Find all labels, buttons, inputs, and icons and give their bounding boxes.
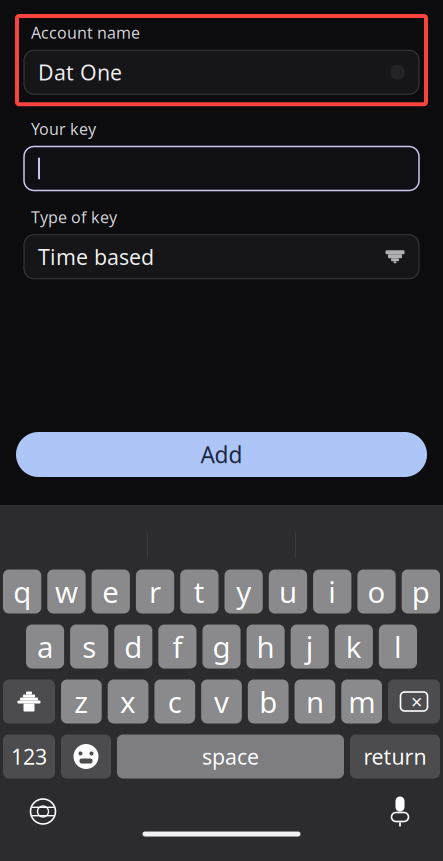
staticText: m [348, 682, 375, 721]
button[interactable]: x [108, 679, 148, 723]
staticText: e [102, 572, 119, 611]
staticText: Your key [31, 118, 96, 139]
button[interactable]: z [61, 679, 102, 723]
button[interactable]: r [136, 569, 174, 613]
staticText: q [13, 572, 31, 611]
button[interactable] [24, 146, 419, 190]
button[interactable]: Dictation [377, 790, 423, 832]
button[interactable]: e [92, 569, 130, 613]
staticText: p [412, 572, 430, 611]
staticText: i [328, 572, 336, 611]
button[interactable]: y [224, 569, 263, 613]
staticText: Type of key [31, 206, 117, 228]
staticText: 123 [11, 742, 47, 771]
button[interactable]: d [114, 624, 152, 668]
staticText: return [363, 742, 426, 771]
button[interactable]: Add [16, 432, 427, 477]
staticText: l [394, 627, 402, 666]
button[interactable]: j [291, 624, 329, 668]
staticText: n [306, 682, 324, 721]
staticText: v [214, 682, 229, 721]
button[interactable]: m [341, 679, 382, 723]
staticText: d [124, 627, 142, 666]
button[interactable]: t [180, 569, 218, 613]
button[interactable]: Dat One [24, 50, 419, 94]
button[interactable]: 123 [3, 734, 55, 778]
staticText: Add [200, 439, 242, 469]
button[interactable]: space [117, 734, 344, 778]
staticText: x [120, 682, 136, 721]
staticText: s [82, 627, 96, 666]
staticText: u [279, 572, 297, 611]
staticText: f [172, 627, 182, 666]
button[interactable]: f [158, 624, 196, 668]
staticText: Time based [38, 243, 154, 271]
staticText: × [411, 688, 422, 715]
button[interactable]: v [201, 679, 242, 723]
staticText: h [257, 627, 275, 666]
button[interactable]: i [313, 569, 351, 613]
staticText: a [37, 627, 53, 666]
button[interactable]: b [248, 679, 289, 723]
staticText: z [74, 682, 88, 721]
button[interactable]: Next keyboard [20, 790, 66, 832]
button[interactable]: k [335, 624, 373, 668]
button[interactable]: n [295, 679, 335, 723]
button[interactable]: o [357, 569, 396, 613]
button[interactable]: return [350, 734, 440, 778]
staticText: w [55, 572, 78, 611]
button[interactable]: Shift [3, 679, 55, 723]
staticText: Account name [31, 22, 140, 43]
button[interactable]: a [26, 624, 64, 668]
button[interactable]: Emoji [61, 734, 111, 778]
staticText: Dat One [38, 58, 122, 86]
button[interactable]: q [3, 569, 41, 613]
button[interactable]: u [269, 569, 307, 613]
button[interactable]: l [379, 624, 417, 668]
staticText: t [194, 572, 205, 611]
staticText: k [346, 627, 362, 666]
button[interactable]: g [202, 624, 240, 668]
button[interactable]: Time based [24, 235, 419, 279]
staticText: g [212, 627, 230, 666]
staticText: b [259, 682, 277, 721]
staticText: o [367, 572, 385, 611]
staticText: space [202, 742, 259, 771]
button[interactable]: w [47, 569, 86, 613]
button[interactable]: c [154, 679, 195, 723]
staticText: c [168, 682, 182, 721]
staticText: y [236, 572, 251, 611]
button[interactable]: h [247, 624, 285, 668]
button[interactable]: p [402, 569, 440, 613]
button[interactable]: Delete [388, 679, 440, 723]
button[interactable]: s [70, 624, 108, 668]
staticText: j [306, 627, 314, 666]
staticText: r [149, 572, 161, 611]
